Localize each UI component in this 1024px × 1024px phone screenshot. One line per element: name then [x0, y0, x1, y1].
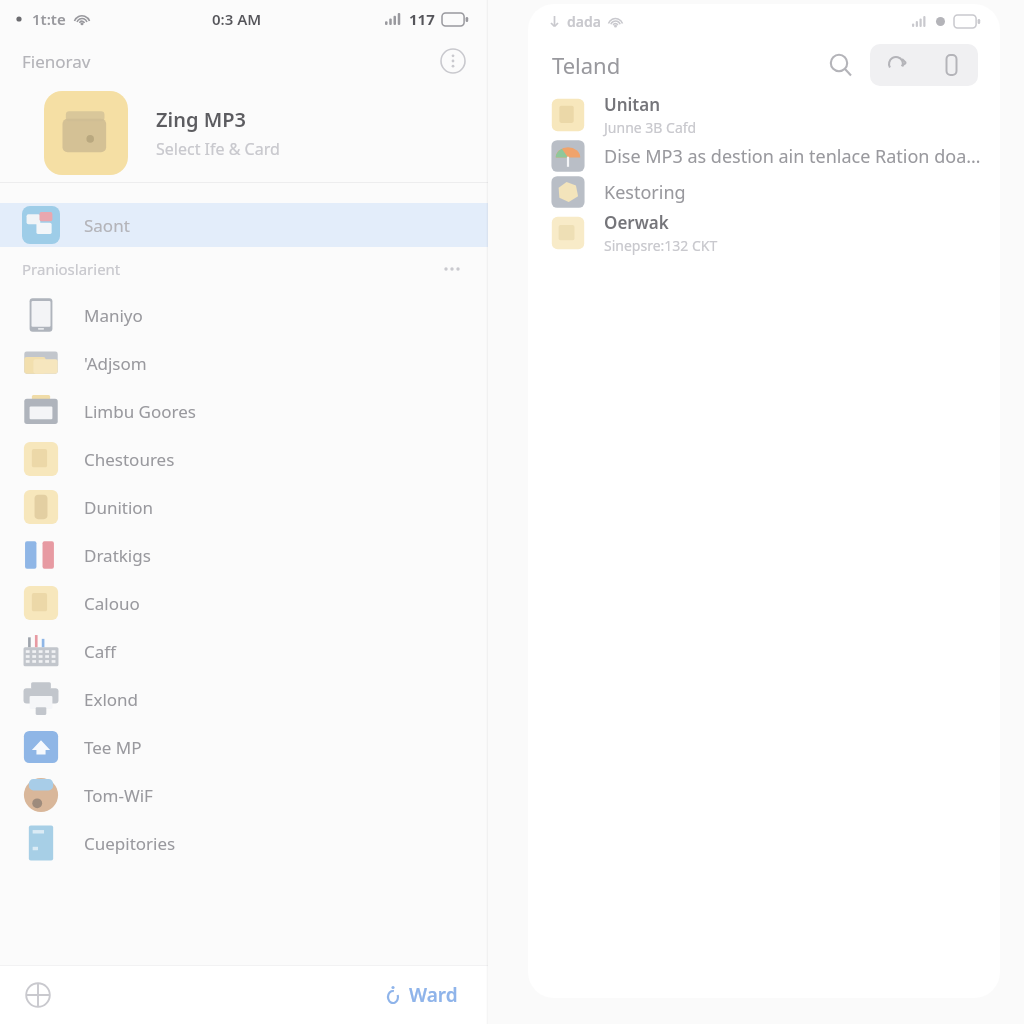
- button[interactable]: Kestoring: [528, 174, 1000, 210]
- button[interactable]: Saont: [0, 203, 488, 247]
- staticText: Maniyo: [84, 304, 143, 327]
- button[interactable]: Oerwak: [528, 210, 1000, 256]
- staticText: 0:3 AM: [212, 9, 262, 29]
- staticText: Limbu Goores: [84, 400, 196, 423]
- button[interactable]: Ward: [377, 978, 464, 1012]
- staticText: Unitan: [604, 93, 661, 116]
- button[interactable]: Chestoures: [0, 435, 488, 483]
- staticText: Exlond: [84, 688, 139, 711]
- button[interactable]: Search: [822, 46, 860, 84]
- button[interactable]: Cuepitories: [0, 819, 488, 867]
- staticText: Ward: [409, 982, 458, 1008]
- button[interactable]: 'Adjsom: [0, 339, 488, 387]
- staticText: Select Ife & Card: [156, 138, 280, 160]
- staticText: Kestoring: [604, 180, 686, 205]
- button[interactable]: Unitan: [528, 92, 1000, 138]
- staticText: Sinepsre:132 CKT: [604, 236, 718, 255]
- staticText: Caff: [84, 640, 116, 663]
- staticText: Saont: [84, 214, 130, 237]
- button[interactable]: Add: [20, 977, 56, 1013]
- staticText: Zing MP3: [156, 106, 246, 133]
- staticText: Dise MP3 as destion ain tenlace Ration d…: [604, 144, 982, 169]
- staticText: Junne 3B Cafd: [604, 118, 697, 137]
- button[interactable]: Zing MP3: [0, 84, 488, 182]
- button[interactable]: Tee MP: [0, 723, 488, 771]
- button[interactable]: Dunition: [0, 483, 488, 531]
- staticText: Teland: [552, 50, 621, 80]
- button[interactable]: Dise MP3 as destion ain tenlace Ration d…: [528, 138, 1000, 174]
- button[interactable]: Dratkigs: [0, 531, 488, 579]
- staticText: 1t:te: [32, 9, 66, 29]
- staticText: Pranioslarient: [22, 259, 121, 279]
- button[interactable]: Share: [870, 44, 924, 86]
- staticText: Dratkigs: [84, 544, 151, 567]
- staticText: Chestoures: [84, 448, 175, 471]
- staticText: Oerwak: [604, 211, 669, 234]
- button[interactable]: Caff: [0, 627, 488, 675]
- button[interactable]: Section menu: [438, 255, 466, 283]
- button[interactable]: Calouo: [0, 579, 488, 627]
- staticText: Dunition: [84, 496, 154, 519]
- button[interactable]: Exlond: [0, 675, 488, 723]
- staticText: Cuepitories: [84, 832, 176, 855]
- button[interactable]: More options: [438, 46, 468, 76]
- staticText: Tee MP: [84, 736, 142, 759]
- staticText: dada: [567, 12, 601, 31]
- staticText: 117: [409, 9, 435, 29]
- button[interactable]: Maniyo: [0, 291, 488, 339]
- staticText: Tom-WiF: [84, 784, 153, 807]
- button[interactable]: Tom-WiF: [0, 771, 488, 819]
- button[interactable]: Device: [924, 44, 978, 86]
- staticText: 'Adjsom: [84, 352, 147, 375]
- button[interactable]: Limbu Goores: [0, 387, 488, 435]
- staticText: Fienorav: [22, 50, 91, 73]
- staticText: Calouo: [84, 592, 140, 615]
